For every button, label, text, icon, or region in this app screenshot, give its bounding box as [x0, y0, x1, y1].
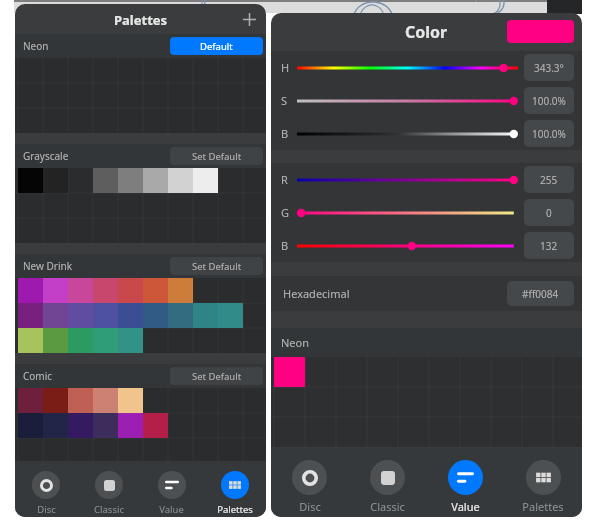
button[interactable]: Current colour: [507, 20, 574, 43]
staticText: Set Default: [192, 150, 242, 163]
staticText: Default: [200, 40, 233, 53]
staticText: Disc: [299, 499, 321, 514]
button[interactable]: #ff0084: [507, 281, 574, 306]
staticText: Set Default: [192, 260, 242, 273]
staticText: 132: [540, 239, 558, 253]
staticText: Color: [405, 21, 448, 43]
button[interactable]: Disc: [15, 461, 77, 517]
button[interactable]: Default: [170, 37, 263, 55]
staticText: R: [281, 172, 288, 187]
button[interactable]: Set Default: [170, 257, 263, 275]
button[interactable]: 255: [524, 166, 574, 193]
staticText: Classic: [370, 499, 405, 514]
button[interactable]: Palettes: [203, 461, 266, 517]
button[interactable]: R slider: [297, 169, 518, 191]
staticText: Classic: [94, 503, 124, 516]
button[interactable]: G slider: [297, 202, 518, 224]
staticText: 0: [546, 206, 552, 220]
button[interactable]: Set Default: [170, 147, 263, 165]
button[interactable]: 343.3°: [524, 54, 574, 81]
button[interactable]: Classic: [77, 461, 140, 517]
staticText: 100.0%: [532, 127, 566, 141]
staticText: B: [281, 126, 289, 141]
button[interactable]: 0: [524, 199, 574, 226]
staticText: Comic: [23, 369, 53, 383]
button[interactable]: 100.0%: [524, 87, 574, 114]
staticText: Hexadecimal: [283, 286, 350, 301]
button[interactable]: Classic: [348, 448, 426, 517]
staticText: Neon: [281, 335, 310, 350]
staticText: Value: [451, 499, 480, 514]
staticText: 100.0%: [532, 94, 566, 108]
staticText: Palettes: [522, 499, 564, 514]
button[interactable]: 132: [524, 232, 574, 259]
staticText: Set Default: [192, 370, 242, 383]
staticText: Grayscale: [23, 149, 69, 163]
button[interactable]: Add palette: [236, 6, 262, 32]
button[interactable]: Value: [140, 461, 203, 517]
staticText: G: [281, 205, 290, 220]
button[interactable]: Set Default: [170, 367, 263, 385]
staticText: #ff0084: [522, 287, 559, 301]
staticText: Palettes: [114, 11, 168, 29]
staticText: 343.3°: [534, 61, 564, 75]
button[interactable]: S slider: [297, 90, 518, 112]
button[interactable]: H slider: [297, 57, 518, 79]
staticText: S: [281, 93, 288, 108]
button[interactable]: Value: [426, 448, 504, 517]
staticText: H: [281, 60, 290, 75]
staticText: Palettes: [217, 503, 253, 516]
button[interactable]: Disc: [271, 448, 348, 517]
button[interactable]: B slider: [297, 123, 518, 145]
staticText: Value: [159, 503, 184, 516]
staticText: New Drink: [23, 259, 73, 273]
staticText: B: [281, 238, 289, 253]
staticText: 255: [540, 173, 558, 187]
staticText: Neon: [23, 39, 49, 53]
button[interactable]: 100.0%: [524, 120, 574, 147]
staticText: Disc: [37, 503, 56, 516]
button[interactable]: B slider: [297, 235, 518, 257]
button[interactable]: Palettes: [504, 448, 582, 517]
